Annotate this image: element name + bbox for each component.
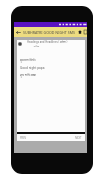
button[interactable]: Home [75, 27, 84, 37]
button[interactable]: Bookmark [84, 27, 87, 37]
staticText: ऑफिस [27, 45, 40, 48]
staticText: सुप्रभात मित्रो। Good night papa शुभ रात… [20, 58, 45, 76]
staticText: PREV [20, 136, 27, 140]
button[interactable]: Navigate up [14, 27, 23, 37]
staticText: NEXT [75, 136, 82, 140]
staticText: SUBHRATRI GOOD NIGHT SMS [23, 30, 75, 35]
staticText: Headings and Headlines ( सरिता ) [27, 40, 68, 44]
